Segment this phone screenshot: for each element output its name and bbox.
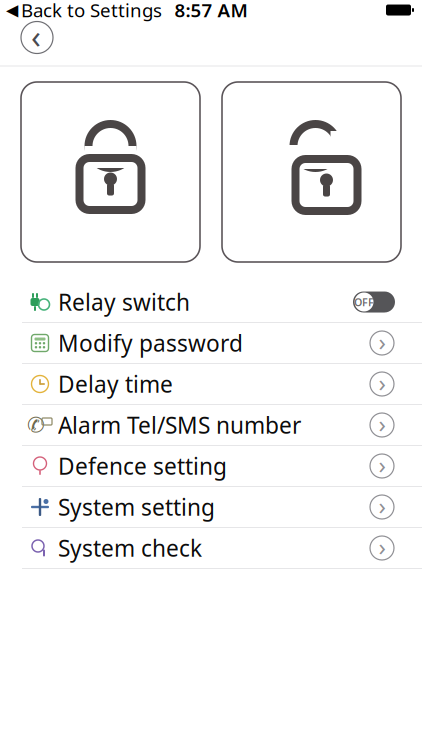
button[interactable]: Relay switch [0,282,422,323]
staticText: › [378,490,385,521]
button[interactable]: System check [0,528,422,569]
staticText: System check [58,533,202,563]
staticText: Alarm Tel/SMS number [58,410,301,440]
staticText: System setting [58,492,215,522]
staticText: › [378,326,385,357]
button[interactable]: Defence setting [0,446,422,487]
button[interactable]: Delay time [0,364,422,405]
button[interactable]: ◀ [0,0,162,22]
button[interactable] [222,82,401,262]
staticText: Relay switch [58,287,190,317]
button[interactable]: System setting [0,487,422,528]
staticText: › [378,531,385,562]
button[interactable]: ✆ [0,405,422,446]
staticText: Defence setting [58,451,227,481]
button[interactable] [21,82,200,262]
staticText: OFF [354,295,374,309]
staticText: Modify password [58,328,243,358]
staticText: ◀ [6,1,18,19]
staticText: Back to Settings [21,0,162,22]
staticText: ‹ [31,15,41,57]
staticText: 8:57 AM [174,0,247,22]
button[interactable]: Back [15,17,59,57]
staticText: › [378,367,385,398]
staticText: › [378,408,385,439]
staticText: › [378,449,385,480]
staticText: Delay time [58,369,173,399]
button[interactable]: Modify password [0,323,422,364]
staticText: ✆ [27,413,45,437]
